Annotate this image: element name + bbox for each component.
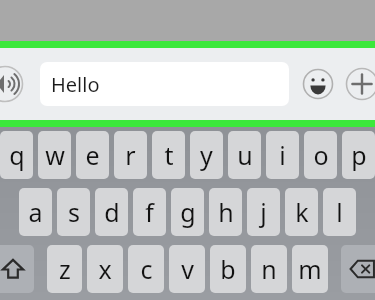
- staticText: w: [45, 138, 65, 172]
- staticText: s: [68, 195, 80, 229]
- staticText: m: [298, 252, 322, 286]
- staticText: v: [181, 252, 194, 286]
- button[interactable]: n: [251, 245, 287, 293]
- staticText: f: [145, 195, 154, 229]
- button[interactable]: k: [285, 188, 318, 236]
- staticText: u: [237, 138, 253, 172]
- button[interactable]: m: [292, 245, 328, 293]
- button[interactable]: w: [38, 131, 71, 179]
- button[interactable]: q: [0, 131, 33, 179]
- staticText: t: [164, 138, 174, 172]
- button[interactable]: r: [114, 131, 147, 179]
- button[interactable]: e: [76, 131, 109, 179]
- staticText: i: [279, 138, 286, 172]
- button[interactable]: i: [266, 131, 299, 179]
- staticText: p: [351, 138, 367, 172]
- button[interactable]: g: [171, 188, 204, 236]
- staticText: r: [125, 138, 136, 172]
- button[interactable]: f: [133, 188, 166, 236]
- staticText: q: [9, 138, 25, 172]
- staticText: b: [220, 252, 236, 286]
- button[interactable]: s: [57, 188, 90, 236]
- staticText: c: [140, 252, 153, 286]
- button[interactable]: l: [323, 188, 356, 236]
- staticText: o: [313, 138, 329, 172]
- button[interactable]: p: [342, 131, 375, 179]
- staticText: Hello: [51, 71, 100, 98]
- staticText: j: [260, 195, 267, 229]
- button[interactable]: Hello: [40, 62, 289, 106]
- button[interactable]: Backspace: [341, 245, 375, 293]
- button[interactable]: z: [47, 245, 82, 293]
- button[interactable]: Emoji: [301, 67, 335, 101]
- button[interactable]: x: [87, 245, 123, 293]
- button[interactable]: Add attachment: [345, 67, 375, 101]
- staticText: h: [218, 195, 234, 229]
- staticText: a: [28, 195, 43, 229]
- button[interactable]: Shift: [0, 245, 34, 293]
- button[interactable]: t: [152, 131, 185, 179]
- button[interactable]: a: [19, 188, 52, 236]
- staticText: k: [295, 195, 309, 229]
- staticText: d: [104, 195, 120, 229]
- staticText: e: [85, 138, 100, 172]
- button[interactable]: y: [190, 131, 223, 179]
- button[interactable]: o: [304, 131, 337, 179]
- staticText: l: [336, 195, 343, 229]
- staticText: y: [200, 138, 213, 172]
- button[interactable]: d: [95, 188, 128, 236]
- button[interactable]: v: [169, 245, 205, 293]
- staticText: n: [261, 252, 277, 286]
- button[interactable]: Voice message: [0, 65, 24, 103]
- staticText: z: [59, 252, 71, 286]
- button[interactable]: b: [210, 245, 246, 293]
- staticText: g: [180, 195, 196, 229]
- button[interactable]: c: [128, 245, 164, 293]
- button[interactable]: h: [209, 188, 242, 236]
- staticText: x: [98, 252, 112, 286]
- button[interactable]: j: [247, 188, 280, 236]
- button[interactable]: u: [228, 131, 261, 179]
